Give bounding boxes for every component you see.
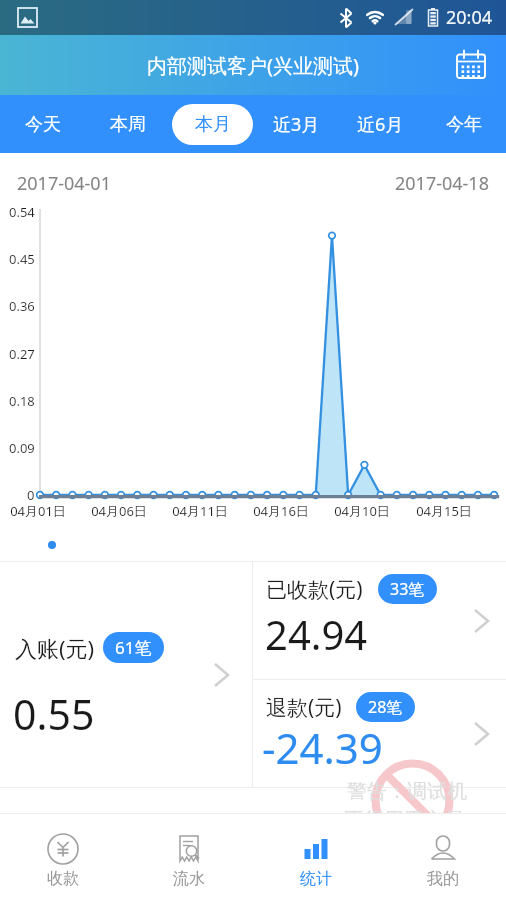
staticText: 近3月 [273,112,320,137]
staticText: 04月16日 [253,502,309,520]
staticText: 04月01日 [10,502,66,520]
staticText: 04月15日 [416,502,472,520]
button[interactable]: 我的 [379,817,506,900]
staticText: 24.94 [265,607,368,661]
staticText: 本月 [195,113,231,136]
staticText: 04月06日 [91,502,147,520]
staticText: 内部测试客户(兴业测试) [147,52,359,79]
staticText: 近6月 [357,112,404,137]
staticText: 我的 [427,869,459,889]
staticText: 流水 [173,869,205,889]
staticText: 0.45 [9,250,35,268]
staticText: 2017-04-01 [17,171,111,196]
staticText: 本周 [110,113,146,136]
button[interactable]: 近3月 [254,95,338,153]
staticText: 04月11日 [172,502,228,520]
staticText: 2017-04-18 [395,171,489,196]
staticText: 入账(元) [15,633,95,663]
staticText: 统计 [300,869,332,889]
staticText: 收款 [47,869,79,889]
button[interactable]: 近6月 [338,95,422,153]
staticText: 04月10日 [334,502,390,520]
staticText: 33笔 [390,578,425,600]
staticText: 0 [27,486,35,504]
button[interactable]: 退款(元) [253,680,506,788]
button[interactable]: 本周 [85,95,170,153]
button[interactable]: 今天 [0,95,85,153]
button[interactable]: 统计 [252,817,379,900]
staticText: 已收款(元) [266,575,363,604]
staticText: -24.39 [262,719,383,776]
staticText: 0.18 [9,392,35,410]
button[interactable]: 今年 [422,95,506,153]
staticText: 警告：调试机 [347,779,467,804]
staticText: 0.55 [13,686,95,742]
staticText: 28笔 [368,696,403,718]
staticText: 61笔 [115,636,152,659]
staticText: 0.27 [9,345,35,363]
staticText: 0.09 [9,439,35,457]
staticText: 退款(元) [266,693,342,722]
button[interactable]: 流水 [126,817,252,900]
button[interactable]: 已收款(元) [253,562,506,679]
staticText: 今天 [25,113,61,136]
button[interactable]: 本月 [170,95,254,153]
staticText: 0.54 [9,203,35,221]
staticText: 0.36 [9,297,35,315]
button[interactable]: 入账(元) [0,562,252,788]
staticText: 20:04 [446,5,493,30]
staticText: 不得用于交易! [344,806,470,833]
button[interactable]: Calendar [448,42,494,88]
button[interactable]: 收款 [0,817,126,900]
staticText: 今年 [446,113,482,136]
